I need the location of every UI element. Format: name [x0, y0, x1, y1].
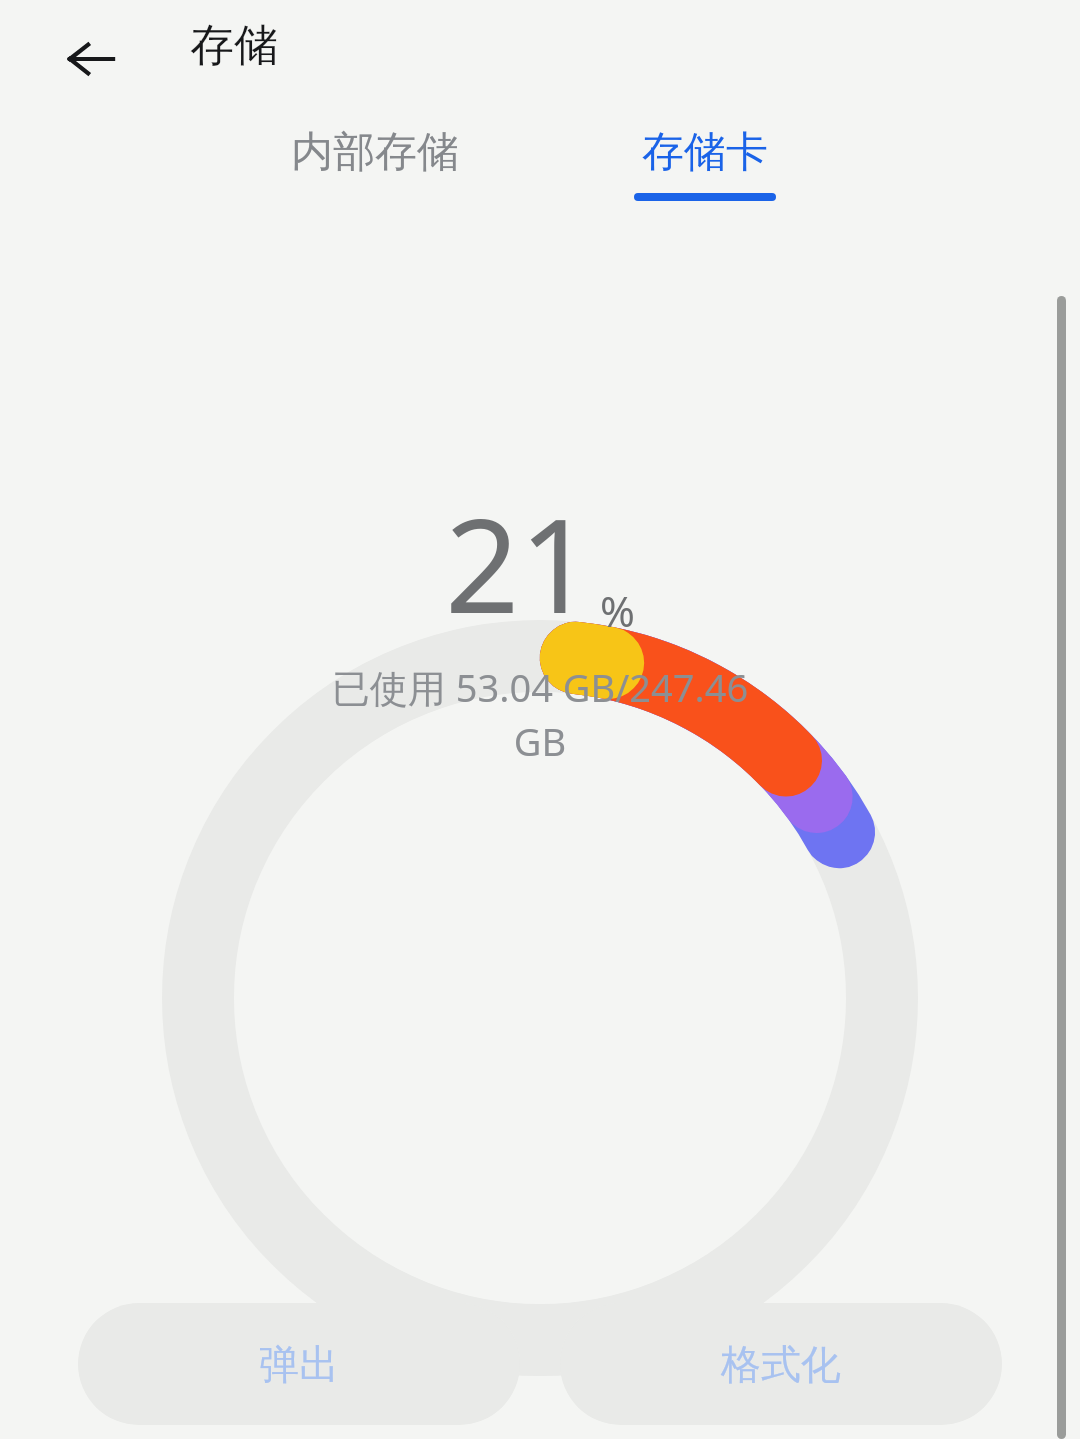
- staticText: 已使用 53.04 GB/247.46 GB: [305, 661, 775, 767]
- staticText: %: [600, 582, 635, 639]
- button[interactable]: 弹出: [78, 1303, 520, 1425]
- staticText: 弹出: [259, 1339, 339, 1389]
- staticText: 存储卡: [642, 126, 768, 179]
- staticText: 格式化: [721, 1339, 841, 1389]
- button[interactable]: Back: [52, 20, 130, 98]
- staticText: 存储: [190, 18, 278, 73]
- button[interactable]: 内部存储: [225, 118, 525, 193]
- staticText: 内部存储: [291, 126, 459, 179]
- button[interactable]: 格式化: [560, 1303, 1002, 1425]
- button[interactable]: 存储卡: [555, 118, 855, 201]
- staticText: 21: [445, 474, 594, 651]
